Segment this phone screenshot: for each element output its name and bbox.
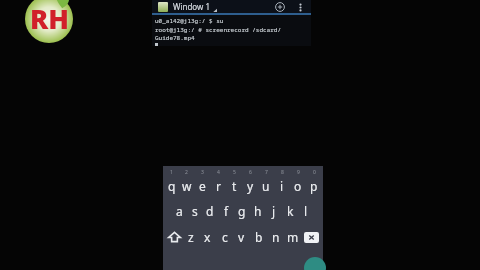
- staticText: p: [310, 178, 318, 194]
- staticText: root@j13g:/ # screenrecord /sdcard/Guide…: [155, 26, 311, 42]
- button[interactable]: l: [298, 200, 314, 222]
- button[interactable]: n: [267, 225, 284, 249]
- button[interactable]: m: [284, 225, 301, 249]
- staticText: h: [254, 203, 262, 219]
- button[interactable]: Backspace: [301, 225, 321, 249]
- button[interactable]: z: [183, 225, 199, 249]
- button[interactable]: 0: [306, 169, 322, 196]
- staticText: 7: [265, 169, 268, 176]
- staticText: r: [216, 178, 221, 194]
- button[interactable]: g: [234, 200, 250, 222]
- button[interactable]: 8: [274, 169, 290, 196]
- staticText: 4: [217, 169, 220, 176]
- button[interactable]: j: [266, 200, 282, 222]
- staticText: z: [188, 229, 194, 245]
- button[interactable]: s: [187, 200, 202, 222]
- staticText: s: [192, 203, 198, 219]
- button[interactable]: v: [233, 225, 250, 249]
- staticText: 1: [170, 169, 173, 176]
- staticText: j: [272, 203, 276, 219]
- staticText: i: [280, 178, 284, 194]
- button[interactable]: 1: [164, 169, 179, 196]
- staticText: RH: [30, 0, 69, 37]
- button[interactable]: k: [282, 200, 298, 222]
- staticText: t: [232, 178, 237, 194]
- button[interactable]: New window: [273, 0, 286, 13]
- staticText: w: [182, 178, 192, 194]
- staticText: n: [272, 229, 280, 245]
- staticText: 0: [313, 169, 316, 176]
- staticText: u: [262, 178, 270, 194]
- staticText: y: [247, 178, 254, 194]
- staticText: 2: [185, 169, 188, 176]
- staticText: x: [204, 229, 211, 245]
- button[interactable]: 9: [290, 169, 306, 196]
- button[interactable]: 7: [258, 169, 274, 196]
- staticText: m: [287, 229, 299, 245]
- button[interactable]: Shift: [165, 225, 183, 249]
- staticText: 6: [249, 169, 252, 176]
- staticText: v: [238, 229, 245, 245]
- staticText: Window 1: [173, 1, 210, 12]
- staticText: c: [222, 229, 228, 245]
- staticText: u0_a142@j13g:/ $ su: [155, 17, 224, 25]
- button[interactable]: 2: [179, 169, 194, 196]
- staticText: b: [255, 229, 263, 245]
- button[interactable]: b: [250, 225, 267, 249]
- button[interactable]: c: [216, 225, 233, 249]
- button[interactable]: 5: [226, 169, 242, 196]
- staticText: 9: [297, 169, 300, 176]
- staticText: l: [304, 203, 308, 219]
- button[interactable]: Window 1: [173, 1, 217, 12]
- button[interactable]: 4: [210, 169, 226, 196]
- staticText: a: [176, 203, 183, 219]
- staticText: d: [206, 203, 214, 219]
- staticText: f: [224, 203, 229, 219]
- staticText: 5: [233, 169, 236, 176]
- button[interactable]: h: [250, 200, 266, 222]
- button[interactable]: a: [172, 200, 187, 222]
- button[interactable]: x: [199, 225, 216, 249]
- button[interactable]: 6: [242, 169, 258, 196]
- staticText: 3: [201, 169, 204, 176]
- button[interactable]: 3: [194, 169, 210, 196]
- button[interactable]: More options: [294, 1, 306, 13]
- staticText: o: [294, 178, 302, 194]
- staticText: 8: [281, 169, 284, 176]
- staticText: e: [199, 178, 206, 194]
- staticText: q: [168, 178, 176, 194]
- button[interactable]: d: [202, 200, 218, 222]
- staticText: g: [238, 203, 246, 219]
- staticText: k: [287, 203, 294, 219]
- button[interactable]: f: [218, 200, 234, 222]
